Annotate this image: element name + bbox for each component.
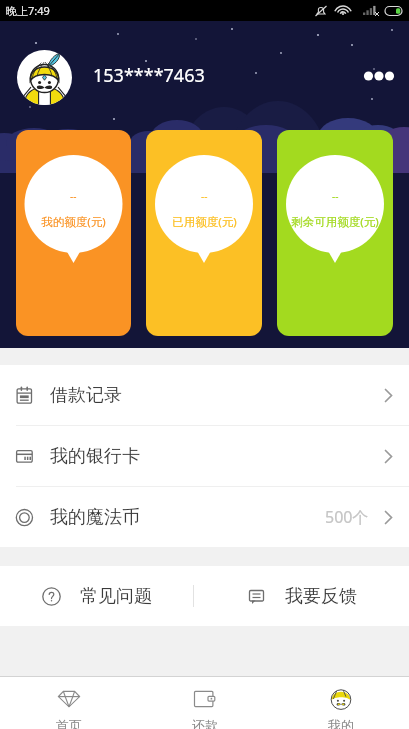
staticText: 153****7463 [93, 63, 205, 88]
staticText: 500个 [325, 506, 369, 528]
button[interactable]: 我的 [273, 677, 409, 729]
staticText: -- [332, 189, 339, 203]
button[interactable]: -- [146, 130, 262, 336]
button[interactable]: More options [357, 54, 401, 98]
staticText: 剩余可用额度(元) [291, 214, 379, 230]
staticText: 我的 [328, 717, 354, 729]
staticText: 我的额度(元) [41, 214, 106, 230]
button[interactable]: 还款 [137, 677, 273, 729]
button[interactable]: 我的魔法币 [0, 487, 409, 547]
button[interactable]: 首页 [0, 677, 137, 729]
staticText: 常见问题 [80, 585, 152, 608]
button[interactable]: -- [16, 130, 131, 336]
button[interactable]: 我的银行卡 [0, 426, 409, 486]
staticText: 已用额度(元) [172, 214, 237, 230]
button[interactable]: 常见问题 [0, 566, 193, 626]
staticText: 我的魔法币 [50, 506, 140, 529]
staticText: 借款记录 [50, 384, 122, 407]
staticText: 首页 [56, 717, 82, 729]
button[interactable]: -- [277, 130, 393, 336]
button[interactable]: 我要反馈 [194, 566, 409, 626]
staticText: -- [70, 189, 77, 203]
button[interactable]: 借款记录 [0, 365, 409, 425]
button[interactable]: Profile avatar [17, 50, 72, 105]
staticText: 还款 [192, 717, 218, 729]
staticText: 晚上7:49 [6, 3, 50, 18]
staticText: 我要反馈 [285, 585, 357, 608]
staticText: -- [201, 189, 208, 203]
staticText: 我的银行卡 [50, 445, 140, 468]
